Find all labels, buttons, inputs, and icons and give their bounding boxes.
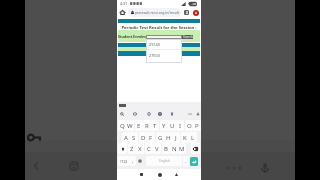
staticText: V	[155, 145, 159, 153]
staticText: R	[145, 122, 149, 130]
button[interactable]: T	[151, 120, 159, 131]
staticText: Student Enrolment No.	[118, 34, 159, 39]
staticText: S	[132, 134, 136, 142]
button[interactable]: F	[147, 132, 155, 143]
button[interactable]: More	[187, 111, 193, 117]
staticText: T	[153, 122, 157, 130]
button[interactable]: U	[168, 120, 176, 131]
button[interactable]: Q	[118, 120, 126, 131]
button[interactable]: Sticker	[169, 111, 175, 117]
button[interactable]: Back	[171, 169, 181, 180]
button[interactable]: G	[156, 132, 164, 143]
staticText: Periodic Test Result for the Session : 2…	[118, 25, 200, 31]
button[interactable]: Comma	[129, 156, 136, 166]
button[interactable]: X	[136, 143, 144, 154]
button[interactable]: I	[176, 120, 184, 131]
button[interactable]: L	[189, 132, 197, 143]
button[interactable]: W	[126, 120, 134, 131]
staticText: G	[158, 134, 163, 142]
button[interactable]: Home	[118, 8, 127, 17]
button[interactable]: Switch tabs	[182, 8, 191, 17]
staticText: P	[195, 122, 199, 130]
button[interactable]: ?123	[118, 156, 129, 166]
staticText: English	[159, 159, 170, 163]
button[interactable]: Z	[128, 143, 136, 154]
staticText: H	[166, 134, 171, 142]
button[interactable]: ptsresult.nicsi.org.in/result	[128, 8, 181, 17]
button[interactable]: D	[139, 132, 147, 143]
staticText: Q	[120, 122, 125, 130]
button[interactable]: 27503	[146, 50, 182, 60]
button[interactable]: B	[162, 143, 170, 154]
staticText: N	[172, 145, 177, 153]
button[interactable]: V	[153, 143, 161, 154]
button[interactable]: Enrolment number field	[146, 35, 182, 39]
button[interactable]: Backspace	[191, 143, 200, 154]
button[interactable]: Search tools	[119, 111, 125, 117]
staticText: ptsresult.nicsi.org.in/result	[135, 10, 179, 15]
button[interactable]: Space	[146, 156, 182, 166]
button[interactable]: R	[143, 120, 151, 131]
staticText: L	[191, 134, 195, 142]
button[interactable]: Y	[160, 120, 168, 131]
staticText: W	[127, 122, 133, 130]
button[interactable]: Search	[182, 35, 193, 39]
button[interactable]: N	[170, 143, 178, 154]
button[interactable]: 29140	[146, 39, 182, 49]
button[interactable]: GIF	[132, 111, 138, 117]
button[interactable]: A	[122, 132, 130, 143]
staticText: A	[124, 134, 128, 142]
staticText: J	[175, 134, 177, 142]
button[interactable]: Shift	[118, 143, 127, 154]
button[interactable]: Emoji	[136, 156, 144, 166]
staticText: ,	[132, 158, 134, 164]
staticText: Search	[183, 35, 193, 39]
staticText: 2	[186, 11, 188, 15]
staticText: K	[183, 134, 187, 142]
button[interactable]: J	[172, 132, 180, 143]
staticText: X	[138, 145, 142, 153]
button[interactable]: Period	[183, 156, 189, 166]
button[interactable]: H	[164, 132, 172, 143]
button[interactable]: K	[181, 132, 189, 143]
button[interactable]: Recent apps	[136, 169, 146, 180]
staticText: ?123	[120, 159, 128, 164]
staticText: Z	[130, 145, 134, 153]
button[interactable]: E	[135, 120, 143, 131]
button[interactable]: P	[193, 120, 201, 131]
staticText: O	[187, 122, 192, 130]
staticText: I	[179, 122, 182, 130]
button[interactable]: S	[130, 132, 138, 143]
staticText: U	[170, 122, 175, 130]
staticText: 4:31	[120, 1, 128, 6]
staticText: B	[164, 145, 168, 153]
staticText: E	[137, 122, 141, 130]
staticText: 27503	[149, 53, 160, 58]
button[interactable]: O	[185, 120, 193, 131]
button[interactable]: M	[178, 143, 186, 154]
button[interactable]: More options	[191, 8, 200, 17]
staticText: .	[185, 158, 187, 164]
button[interactable]: Home	[155, 169, 165, 180]
button[interactable]: Settings	[157, 111, 163, 117]
staticText: C	[147, 145, 151, 153]
button[interactable]: Clipboard	[146, 111, 152, 117]
staticText: Y	[162, 122, 166, 130]
button[interactable]: Enter	[190, 157, 198, 166]
button[interactable]: C	[145, 143, 153, 154]
staticText: D	[141, 134, 146, 142]
staticText: F	[149, 134, 153, 142]
staticText: M	[179, 145, 185, 153]
button[interactable]: Voice input	[195, 111, 201, 117]
staticText: 29140	[149, 42, 160, 47]
